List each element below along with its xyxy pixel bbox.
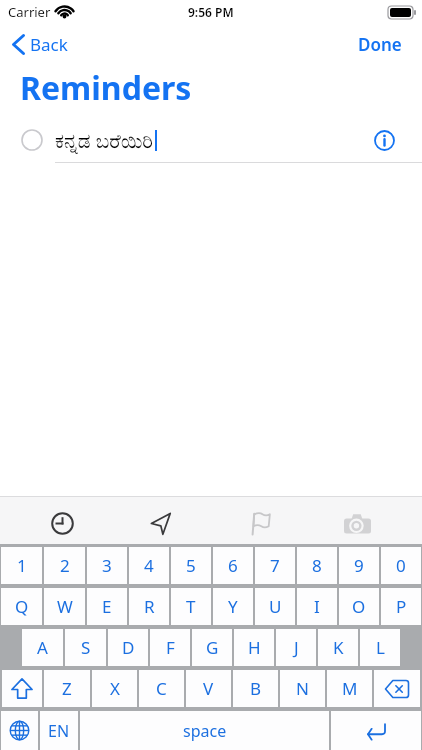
staticText: 8 (312, 554, 322, 577)
staticText: Z (62, 677, 72, 700)
staticText: space (183, 720, 227, 742)
staticText: K (333, 636, 344, 659)
button[interactable]: G (192, 629, 232, 666)
button[interactable] (2, 670, 42, 707)
button[interactable]: 6 (213, 547, 253, 584)
button[interactable]: V (186, 670, 231, 707)
staticText: 3 (102, 554, 112, 577)
staticText: 0 (396, 554, 406, 577)
button[interactable]: Done (358, 33, 402, 56)
staticText: EN (48, 720, 70, 742)
button[interactable]: D (108, 629, 148, 666)
staticText: M (342, 677, 358, 700)
staticText: 6 (228, 554, 238, 577)
button[interactable]: U (255, 588, 295, 625)
button[interactable]: I (297, 588, 337, 625)
staticText: G (206, 636, 219, 659)
button[interactable]: 4 (129, 547, 169, 584)
staticText: D (122, 636, 135, 659)
button[interactable]: L (360, 629, 400, 666)
staticText: W (57, 595, 73, 618)
button[interactable]: 8 (297, 547, 337, 584)
staticText: X (110, 677, 120, 700)
staticText: Y (228, 595, 238, 618)
button[interactable]: Z (44, 670, 90, 707)
button[interactable]: W (44, 588, 85, 625)
staticText: 7 (270, 554, 280, 577)
button[interactable]: M (327, 670, 372, 707)
button[interactable]: 9 (339, 547, 379, 584)
button[interactable]: 7 (255, 547, 295, 584)
button[interactable]: 1 (1, 547, 42, 584)
button[interactable]: E (87, 588, 127, 625)
button[interactable]: space (80, 711, 329, 750)
button[interactable] (13, 497, 112, 544)
staticText: Carrier (8, 3, 51, 21)
staticText: R (144, 595, 155, 618)
button[interactable] (1, 711, 38, 750)
button[interactable]: S (65, 629, 106, 666)
button[interactable] (210, 497, 308, 544)
staticText: B (250, 677, 262, 700)
button[interactable]: C (139, 670, 184, 707)
staticText: Reminders (20, 66, 192, 110)
button[interactable]: J (276, 629, 316, 666)
staticText: 9 (354, 554, 364, 577)
button[interactable]: O (339, 588, 379, 625)
button[interactable]: Q (1, 588, 42, 625)
staticText: C (156, 677, 167, 700)
button[interactable] (331, 711, 421, 750)
staticText: J (294, 636, 299, 659)
staticText: S (81, 636, 91, 659)
button[interactable]: 0 (381, 547, 421, 584)
staticText: U (269, 595, 282, 618)
button[interactable] (308, 497, 406, 544)
staticText: 2 (60, 554, 70, 577)
button[interactable] (374, 130, 395, 151)
staticText: Back (30, 33, 68, 56)
button[interactable]: A (22, 629, 63, 666)
staticText: E (102, 595, 112, 618)
button[interactable] (112, 497, 210, 544)
staticText: V (203, 677, 214, 700)
staticText: F (166, 636, 175, 659)
staticText: Done (358, 33, 402, 56)
button[interactable]: Reminders (20, 66, 422, 110)
button[interactable]: T (171, 588, 211, 625)
button[interactable]: ಕನ್ನಡ ಬರೆಯಿರಿ (0, 118, 422, 162)
staticText: O (352, 595, 366, 618)
staticText: H (248, 636, 261, 659)
staticText: N (296, 677, 309, 700)
button[interactable]: F (150, 629, 190, 666)
staticText: 4 (144, 554, 154, 577)
staticText: 1 (17, 554, 27, 577)
button[interactable] (374, 670, 420, 707)
staticText: 5 (186, 554, 196, 577)
button[interactable]: P (381, 588, 421, 625)
staticText: 9:56 PM (188, 4, 234, 20)
button[interactable]: N (280, 670, 325, 707)
staticText: ಕನ್ನಡ ಬರೆಯಿರಿ (55, 127, 153, 154)
button[interactable]: H (234, 629, 274, 666)
staticText: A (37, 636, 48, 659)
staticText: T (186, 595, 196, 618)
button[interactable]: X (92, 670, 137, 707)
button[interactable]: Y (213, 588, 253, 625)
staticText: L (376, 636, 385, 659)
button[interactable]: 5 (171, 547, 211, 584)
button[interactable]: Back (12, 33, 68, 56)
staticText: I (314, 595, 320, 618)
button[interactable]: 3 (87, 547, 127, 584)
button[interactable]: R (129, 588, 169, 625)
staticText: P (396, 595, 407, 618)
button[interactable]: K (318, 629, 358, 666)
staticText: Q (15, 595, 29, 618)
button[interactable]: B (233, 670, 278, 707)
button[interactable]: EN (40, 711, 78, 750)
button[interactable]: 2 (44, 547, 85, 584)
